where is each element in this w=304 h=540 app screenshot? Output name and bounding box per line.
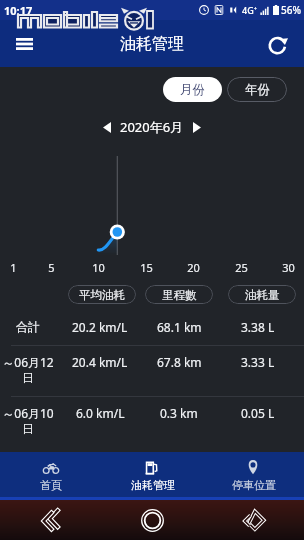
button[interactable]: Back [0, 500, 102, 540]
staticText: 10:17 [4, 3, 33, 18]
button[interactable]: Recents [203, 500, 304, 540]
staticText: ～06月10日 [2, 405, 54, 437]
button[interactable]: ～06月10日 [0, 397, 304, 447]
staticText: 25 [235, 260, 248, 275]
staticText: 20.2 km/L [72, 319, 128, 335]
staticText: 5 [48, 260, 55, 275]
staticText: 年份 [245, 82, 270, 98]
staticText: 20 [187, 260, 200, 275]
staticText: 里程數 [162, 288, 197, 302]
staticText: 2020年6月 [120, 118, 184, 136]
button[interactable]: Next month [187, 117, 207, 137]
button[interactable]: Home [102, 500, 203, 540]
staticText: 0.05 L [241, 405, 275, 421]
staticText: 56% [281, 3, 301, 17]
staticText: 月份 [180, 82, 205, 98]
staticText: 合計 [16, 319, 40, 334]
staticText: 10 [92, 260, 105, 275]
button[interactable]: 停車位置 [203, 452, 304, 497]
button[interactable]: 平均油耗 [68, 285, 136, 304]
button[interactable]: ～06月12日 [0, 346, 304, 396]
staticText: 30 [282, 260, 295, 275]
staticText: 68.1 km [157, 319, 202, 335]
staticText: 4G⁺ [242, 4, 257, 16]
staticText: ～06月12日 [2, 354, 54, 386]
staticText: 油耗量 [245, 288, 280, 302]
staticText: 3.38 L [241, 319, 275, 335]
staticText: 首頁 [40, 478, 62, 492]
staticText: 油耗管理 [120, 34, 184, 54]
button[interactable]: 油耗管理 [102, 452, 203, 497]
staticText: 6.0 km/L [76, 405, 125, 421]
button[interactable]: 里程數 [145, 285, 213, 304]
button[interactable]: Menu [4, 23, 45, 64]
staticText: 67.8 km [157, 354, 202, 370]
staticText: 3.33 L [241, 354, 275, 370]
staticText: 平均油耗 [79, 288, 125, 302]
button[interactable]: Refresh [258, 24, 298, 64]
button[interactable]: 首頁 [0, 452, 102, 497]
staticText: 20.4 km/L [72, 354, 128, 370]
staticText: 停車位置 [232, 478, 276, 492]
button[interactable]: 油耗量 [228, 285, 296, 304]
staticText: 0.3 km [160, 405, 198, 421]
button[interactable]: 月份 [163, 77, 222, 102]
staticText: 油耗管理 [131, 478, 175, 492]
staticText: 15 [140, 260, 153, 275]
staticText: 1 [10, 260, 17, 275]
button[interactable]: 合計 [0, 310, 304, 345]
button[interactable]: 年份 [227, 77, 287, 102]
button[interactable]: Previous month [97, 117, 117, 137]
